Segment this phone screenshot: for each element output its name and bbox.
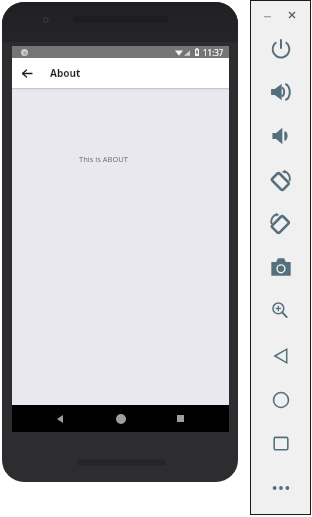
button[interactable]: Minimize xyxy=(259,7,275,23)
button[interactable]: Back xyxy=(270,345,292,367)
button[interactable]: Home xyxy=(106,405,135,432)
button[interactable]: Volume up xyxy=(270,81,292,103)
button[interactable]: Overview xyxy=(270,433,292,455)
staticText: 11:37 xyxy=(203,47,224,58)
staticText: About xyxy=(50,66,81,80)
button[interactable]: Volume down xyxy=(270,125,292,147)
button[interactable]: Power xyxy=(270,37,292,59)
button[interactable]: Home xyxy=(270,389,292,411)
button[interactable]: Navigate up xyxy=(12,58,42,88)
staticText: This is ABOUT xyxy=(79,154,128,164)
button[interactable]: Close xyxy=(284,7,300,23)
button[interactable]: More options xyxy=(270,477,292,499)
button[interactable]: Back xyxy=(46,405,74,432)
button[interactable]: Rotate right xyxy=(270,212,292,234)
button[interactable]: Zoom in xyxy=(270,299,292,321)
button[interactable]: Take screenshot xyxy=(270,256,292,278)
button[interactable]: Rotate left xyxy=(270,169,292,191)
button[interactable]: Recent apps xyxy=(166,405,194,432)
